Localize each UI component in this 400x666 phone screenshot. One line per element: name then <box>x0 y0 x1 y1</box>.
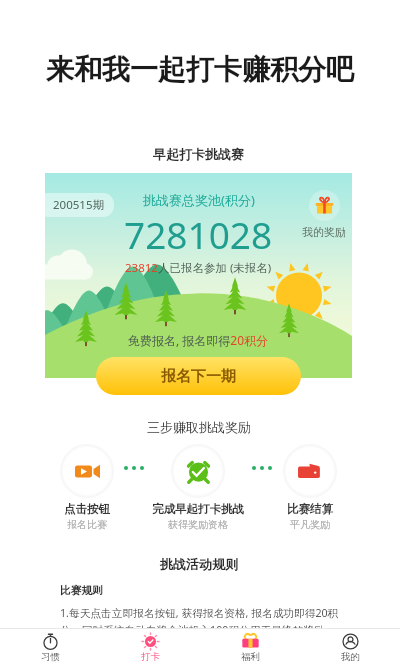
staticText: 挑战赛总奖池(积分) <box>143 191 255 209</box>
staticText: 获得奖励资格 <box>168 518 228 531</box>
staticText: 报名下一期 <box>161 367 236 386</box>
button[interactable]: 完成早起打卡挑战 <box>149 444 247 531</box>
button[interactable]: 福利 <box>200 629 300 666</box>
staticText: 比赛规则 <box>60 584 103 597</box>
other: 打卡 <box>142 633 159 650</box>
button[interactable]: 报名下一期 <box>96 357 301 395</box>
staticText: 来和我一起打卡赚积分吧 <box>0 52 400 87</box>
staticText: 报名比赛 <box>67 518 107 531</box>
staticText: 我的 <box>341 651 360 663</box>
staticText: 1.每天点击立即报名按钮, 获得报名资格, 报名成功即得20积分 同时系统自动向… <box>60 606 340 630</box>
staticText: 挑战活动规则 <box>160 556 238 572</box>
staticText: 我的奖励 <box>302 225 346 239</box>
staticText: 平凡奖励 <box>290 518 330 531</box>
staticText: 200515期 <box>53 197 104 213</box>
other: 福利 <box>242 633 259 650</box>
staticText: 三步赚取挑战奖励 <box>147 419 251 435</box>
staticText: 比赛结算 <box>287 502 333 516</box>
button[interactable]: 习惯 <box>0 629 100 666</box>
staticText: 23812人已报名参加 (未报名) <box>125 260 272 276</box>
button[interactable]: 打卡 <box>100 629 200 666</box>
button[interactable]: 比赛结算 <box>277 444 343 531</box>
staticText: 早起打卡挑战赛 <box>153 146 244 162</box>
staticText: 福利 <box>241 651 260 663</box>
staticText: 免费报名, 报名即得20积分 <box>128 332 269 348</box>
button[interactable]: 点击按钮 <box>54 444 119 531</box>
staticText: 完成早起打卡挑战 <box>152 502 244 516</box>
staticText: 7281028 <box>124 209 273 259</box>
button[interactable]: 我的奖励 <box>296 190 352 239</box>
staticText: 点击按钮 <box>64 502 110 516</box>
button[interactable]: 我的 <box>300 629 400 666</box>
staticText: 打卡 <box>141 651 160 663</box>
other: 我的 <box>342 633 359 650</box>
other: 习惯 <box>42 633 59 650</box>
staticText: 习惯 <box>41 651 60 663</box>
